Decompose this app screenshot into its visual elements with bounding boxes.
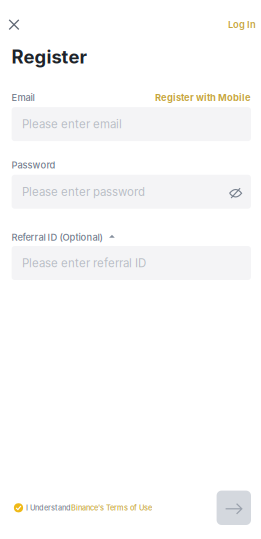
button[interactable]: Close xyxy=(0,11,28,38)
staticText: Email xyxy=(12,92,35,103)
staticText: Register xyxy=(12,46,87,68)
staticText: Password xyxy=(12,159,56,171)
staticText: Binance's Terms of Use xyxy=(71,503,152,512)
staticText: Log In xyxy=(228,19,256,30)
staticText: Please enter password xyxy=(22,185,145,199)
staticText: Please enter email xyxy=(22,117,122,131)
button[interactable]: I Understand xyxy=(12,503,152,512)
staticText: Please enter referral ID xyxy=(22,256,146,270)
staticText: Referral ID (Optional) xyxy=(12,232,103,243)
button[interactable]: Referral ID (Optional) xyxy=(12,232,115,243)
button[interactable]: Continue xyxy=(217,491,251,525)
staticText: Register with Mobile xyxy=(155,92,251,103)
button[interactable]: Register with Mobile xyxy=(155,92,251,103)
button[interactable]: Log In xyxy=(219,10,261,39)
staticText: I Understand xyxy=(26,503,71,512)
